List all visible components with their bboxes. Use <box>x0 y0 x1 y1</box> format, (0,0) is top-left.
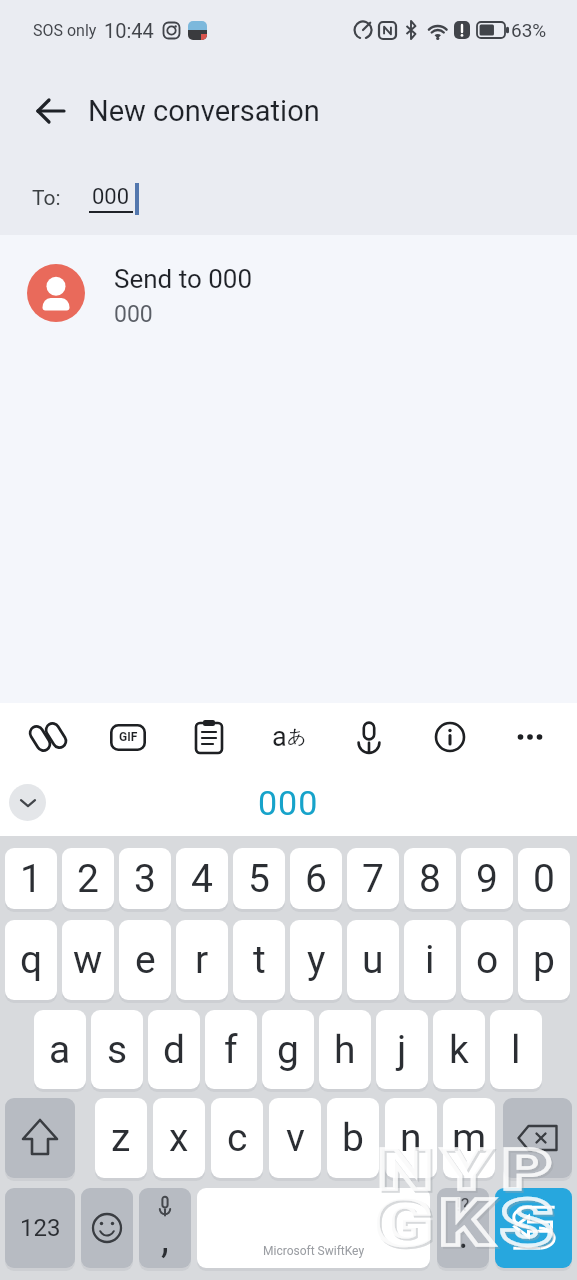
button[interactable]: 9 <box>461 848 513 909</box>
staticText: . <box>458 1211 469 1258</box>
staticText: New conversation <box>88 94 320 128</box>
button[interactable] <box>29 89 73 133</box>
staticText: l <box>511 1027 521 1073</box>
staticText: To: <box>32 186 61 211</box>
button[interactable]: l <box>490 1010 542 1089</box>
staticText: 10:44 <box>104 19 154 42</box>
staticText: h <box>334 1027 356 1073</box>
button[interactable]: 5 <box>233 848 285 909</box>
staticText: NYP <box>380 1140 566 1204</box>
button[interactable]: Microsoft SwiftKey <box>197 1188 430 1268</box>
button[interactable]: j <box>376 1010 428 1089</box>
staticText: 000 <box>92 184 130 210</box>
staticText: , <box>161 1215 169 1262</box>
staticText: c <box>227 1115 248 1161</box>
button[interactable] <box>9 784 46 821</box>
button[interactable]: 1 <box>5 848 57 909</box>
button[interactable]: o <box>461 920 513 1000</box>
button[interactable]: g <box>262 1010 314 1089</box>
staticText: d <box>163 1027 185 1073</box>
button[interactable]: f <box>205 1010 257 1089</box>
button[interactable] <box>510 717 550 757</box>
button[interactable]: w <box>62 920 114 1000</box>
button[interactable] <box>81 1188 133 1268</box>
staticText: o <box>476 937 499 983</box>
button[interactable] <box>28 717 68 757</box>
button[interactable]: x <box>153 1098 205 1178</box>
staticText: i <box>425 937 435 983</box>
button[interactable]: y <box>290 920 342 1000</box>
button[interactable]: t <box>233 920 285 1000</box>
button[interactable]: z <box>95 1098 147 1178</box>
button[interactable]: r <box>176 920 228 1000</box>
button[interactable] <box>495 1188 572 1268</box>
staticText: 4 <box>191 856 213 902</box>
button[interactable]: d <box>148 1010 200 1089</box>
staticText: NYP <box>378 1138 564 1202</box>
button[interactable]: c <box>211 1098 263 1178</box>
staticText: あ <box>287 725 307 749</box>
button[interactable]: b <box>327 1098 379 1178</box>
button[interactable] <box>503 1098 572 1178</box>
button[interactable]: To: <box>0 162 577 235</box>
button[interactable] <box>349 717 389 757</box>
staticText: 8 <box>419 856 441 902</box>
staticText: Send to 000 <box>114 264 253 294</box>
staticText: v <box>286 1115 305 1161</box>
staticText: g <box>277 1027 299 1073</box>
staticText: f <box>224 1027 238 1073</box>
button[interactable]: Send to 000 <box>27 264 577 328</box>
button[interactable]: s <box>91 1010 143 1089</box>
button[interactable]: 4 <box>176 848 228 909</box>
staticText: a <box>49 1027 71 1073</box>
button[interactable]: !? <box>437 1188 489 1268</box>
staticText: 000 <box>258 783 319 823</box>
staticText: j <box>397 1027 407 1073</box>
button[interactable]: h <box>319 1010 371 1089</box>
button[interactable]: GIF <box>108 717 148 757</box>
button[interactable]: k <box>433 1010 485 1089</box>
button[interactable]: 2 <box>62 848 114 909</box>
button[interactable]: i <box>404 920 456 1000</box>
staticText: z <box>111 1115 131 1161</box>
button[interactable] <box>5 1098 75 1178</box>
button[interactable]: a <box>34 1010 86 1089</box>
button[interactable]: 123 <box>5 1188 75 1268</box>
button[interactable] <box>430 717 470 757</box>
button[interactable]: 000 <box>0 770 577 836</box>
staticText: 123 <box>20 1214 61 1242</box>
staticText: b <box>342 1115 364 1161</box>
staticText: Microsoft SwiftKey <box>263 1244 365 1258</box>
staticText: 2 <box>77 856 99 902</box>
staticText: r <box>195 937 209 983</box>
button[interactable]: 3 <box>119 848 171 909</box>
staticText: q <box>20 937 43 983</box>
button[interactable]: , <box>139 1188 191 1268</box>
staticText: 7 <box>362 856 384 902</box>
button[interactable]: 8 <box>404 848 456 909</box>
button[interactable]: 6 <box>290 848 342 909</box>
button[interactable]: q <box>5 920 57 1000</box>
staticText: n <box>400 1115 422 1161</box>
staticText: p <box>533 937 555 983</box>
button[interactable]: 0 <box>518 848 570 909</box>
button[interactable]: v <box>269 1098 321 1178</box>
button[interactable]: m <box>443 1098 495 1178</box>
button[interactable]: a <box>269 717 309 757</box>
staticText: 63% <box>511 19 547 41</box>
button[interactable]: p <box>518 920 570 1000</box>
staticText: GKS <box>374 1186 560 1261</box>
staticText: 5 <box>248 856 270 902</box>
staticText: k <box>449 1027 469 1073</box>
button[interactable]: u <box>347 920 399 1000</box>
button[interactable]: n <box>385 1098 437 1178</box>
staticText: 1 <box>20 856 42 902</box>
button[interactable]: e <box>119 920 171 1000</box>
staticText: x <box>169 1115 189 1161</box>
staticText: s <box>107 1027 128 1073</box>
staticText: 9 <box>476 856 498 902</box>
button[interactable] <box>189 717 229 757</box>
button[interactable]: 7 <box>347 848 399 909</box>
staticText: e <box>135 937 156 983</box>
staticText: 0 <box>533 856 555 902</box>
